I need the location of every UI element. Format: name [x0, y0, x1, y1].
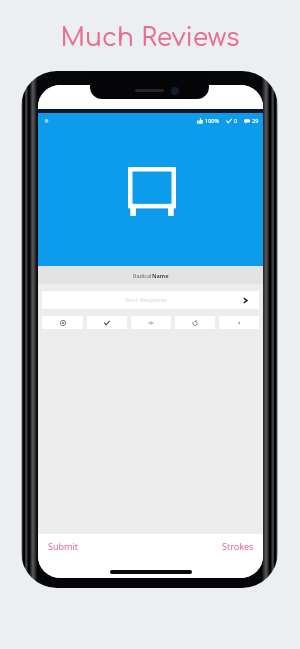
- button[interactable]: Record: [42, 316, 83, 329]
- button[interactable]: Strokes: [215, 537, 263, 555]
- staticText: Your Response: [125, 296, 167, 304]
- button[interactable]: Submit: [38, 537, 86, 555]
- button[interactable]: Back: [219, 316, 259, 329]
- staticText: 0: [234, 117, 238, 124]
- button[interactable]: Accept: [87, 316, 127, 329]
- button[interactable]: Your Response: [42, 291, 259, 309]
- staticText: Name: [152, 272, 169, 279]
- other: Home: [44, 118, 49, 123]
- button[interactable]: Preview: [131, 316, 171, 329]
- staticText: Strokes: [222, 540, 254, 552]
- staticText: Radical: [133, 272, 152, 279]
- button[interactable]: Undo: [175, 316, 215, 329]
- staticText: Submit: [48, 540, 79, 552]
- staticText: 100%: [205, 117, 220, 124]
- staticText: Much Reviews: [60, 24, 240, 52]
- staticText: 29: [252, 117, 259, 124]
